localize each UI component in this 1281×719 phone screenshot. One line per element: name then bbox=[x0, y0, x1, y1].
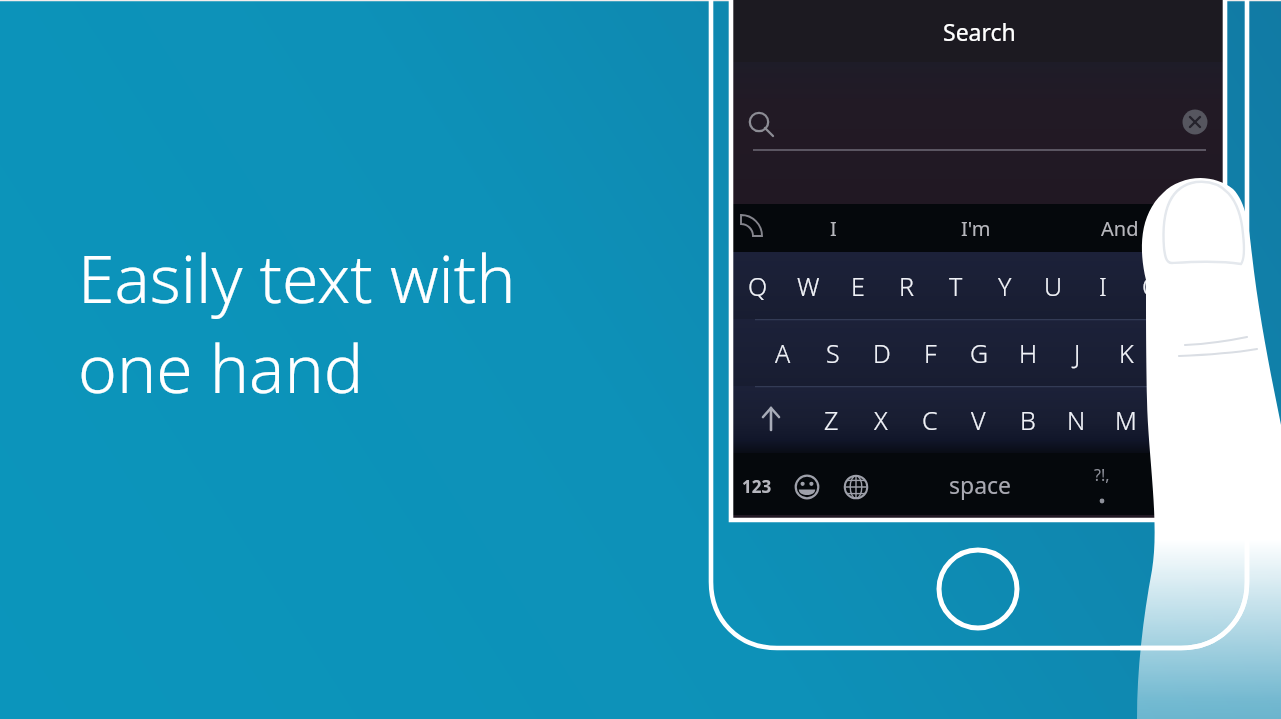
button[interactable]: P bbox=[1176, 252, 1225, 319]
staticText: I bbox=[830, 215, 837, 242]
staticText: Q bbox=[748, 269, 768, 303]
staticText: S bbox=[826, 336, 840, 370]
button[interactable]: M bbox=[1101, 386, 1150, 453]
button[interactable]: T bbox=[931, 252, 980, 319]
button[interactable]: Change language bbox=[831, 453, 880, 515]
button[interactable]: I bbox=[1078, 252, 1127, 319]
button[interactable]: Undo bbox=[733, 204, 761, 252]
staticText: F bbox=[924, 336, 937, 370]
staticText: N bbox=[1067, 403, 1086, 437]
staticText: W bbox=[797, 269, 820, 303]
button[interactable]: Emoji bbox=[781, 453, 831, 515]
button[interactable]: Enter bbox=[1124, 453, 1225, 515]
staticText: Easily text with bbox=[78, 232, 516, 322]
button[interactable]: R bbox=[882, 252, 931, 319]
button[interactable]: Q bbox=[733, 252, 783, 319]
staticText: L bbox=[1169, 336, 1182, 370]
button[interactable]: D bbox=[857, 319, 906, 386]
staticText: Z bbox=[824, 403, 839, 437]
staticText: J bbox=[1074, 336, 1081, 370]
button[interactable]: Shift bbox=[733, 386, 807, 453]
staticText: C bbox=[922, 403, 938, 437]
button[interactable]: X bbox=[856, 386, 905, 453]
button[interactable]: Search bbox=[733, 0, 1225, 62]
staticText: U bbox=[1044, 269, 1063, 303]
staticText: H bbox=[1019, 336, 1038, 370]
button[interactable]: V bbox=[954, 386, 1003, 453]
staticText: X bbox=[874, 403, 888, 437]
button[interactable]: H bbox=[1004, 319, 1053, 386]
button[interactable]: I bbox=[761, 204, 905, 252]
staticText: M bbox=[1115, 403, 1137, 437]
button[interactable]: G bbox=[955, 319, 1004, 386]
staticText: ?!, bbox=[1094, 464, 1110, 486]
button[interactable]: C bbox=[905, 386, 954, 453]
button[interactable]: B bbox=[1003, 386, 1052, 453]
button[interactable]: And bbox=[1047, 204, 1193, 252]
staticText: B bbox=[1020, 403, 1036, 437]
staticText: G bbox=[970, 336, 989, 370]
button[interactable]: I'm bbox=[905, 204, 1047, 252]
button[interactable]: E bbox=[833, 252, 882, 319]
staticText: And bbox=[1101, 215, 1139, 242]
button[interactable]: N bbox=[1052, 386, 1101, 453]
staticText: 123 bbox=[742, 475, 772, 498]
button[interactable]: J bbox=[1053, 319, 1102, 386]
staticText: T bbox=[949, 269, 963, 303]
button[interactable]: W bbox=[783, 252, 833, 319]
staticText: R bbox=[899, 269, 914, 303]
button[interactable]: U bbox=[1029, 252, 1078, 319]
button[interactable]: O bbox=[1127, 252, 1176, 319]
staticText: O bbox=[1142, 269, 1162, 303]
button[interactable]: S bbox=[808, 319, 857, 386]
button[interactable]: ?!, bbox=[1080, 453, 1124, 515]
staticText: space bbox=[949, 469, 1012, 500]
button[interactable]: 123 bbox=[733, 453, 781, 515]
staticText: K bbox=[1119, 336, 1134, 370]
button[interactable] bbox=[733, 62, 1225, 204]
staticText: A bbox=[775, 336, 791, 370]
staticText: I'm bbox=[961, 215, 991, 242]
button[interactable]: Y bbox=[980, 252, 1029, 319]
staticText: I bbox=[1099, 269, 1107, 303]
button[interactable]: Z bbox=[807, 386, 856, 453]
button[interactable]: F bbox=[906, 319, 955, 386]
staticText: E bbox=[851, 269, 865, 303]
button[interactable]: L bbox=[1151, 319, 1200, 386]
button[interactable]: space bbox=[880, 453, 1080, 515]
staticText: one hand bbox=[78, 322, 364, 412]
staticText: V bbox=[971, 403, 986, 437]
staticText: Search bbox=[943, 16, 1016, 47]
button[interactable]: A bbox=[758, 319, 808, 386]
staticText: Y bbox=[998, 269, 1012, 303]
staticText: D bbox=[873, 336, 891, 370]
button[interactable]: K bbox=[1102, 319, 1151, 386]
